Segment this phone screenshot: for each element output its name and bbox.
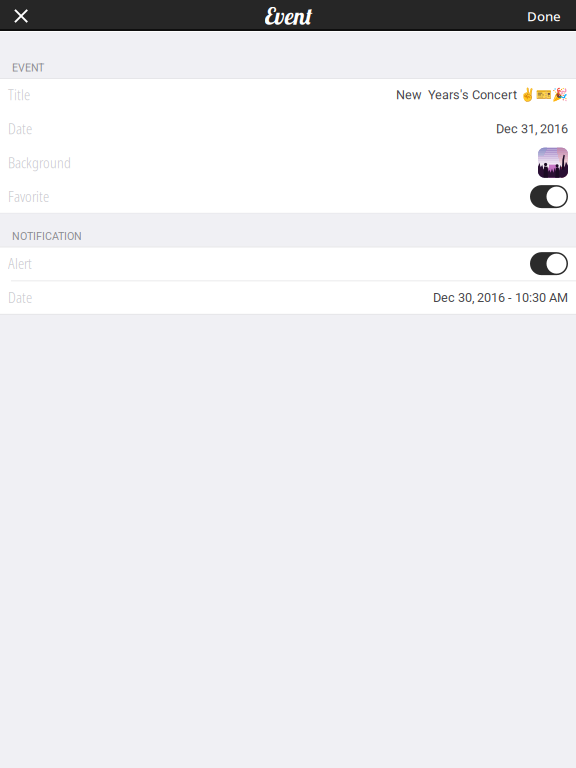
staticText: Dec 30, 2016 - 10:30 AM	[433, 290, 568, 305]
staticText: EVENT	[12, 61, 44, 74]
button[interactable]: Favorite	[0, 180, 576, 213]
staticText: Dec 31, 2016	[496, 121, 568, 136]
staticText: New Years's Concert ✌️🎫🎉	[396, 87, 568, 102]
button[interactable]: Done	[506, 0, 576, 32]
button[interactable]: Alert	[0, 247, 576, 281]
button[interactable]: Date	[0, 281, 576, 314]
staticText: Alert	[8, 254, 32, 273]
staticText: Done	[527, 7, 561, 25]
staticText: NOTIFICATION	[12, 230, 82, 243]
staticText: Title	[8, 85, 30, 104]
button[interactable]: Date	[0, 112, 576, 146]
staticText: Date	[8, 119, 32, 138]
button[interactable]: Close	[0, 0, 58, 32]
button[interactable]: Background	[0, 146, 576, 180]
staticText: Event	[264, 1, 311, 31]
button[interactable]: Title	[0, 78, 576, 112]
staticText: Date	[8, 288, 32, 307]
staticText: Favorite	[8, 187, 49, 206]
staticText: Background	[8, 153, 71, 172]
